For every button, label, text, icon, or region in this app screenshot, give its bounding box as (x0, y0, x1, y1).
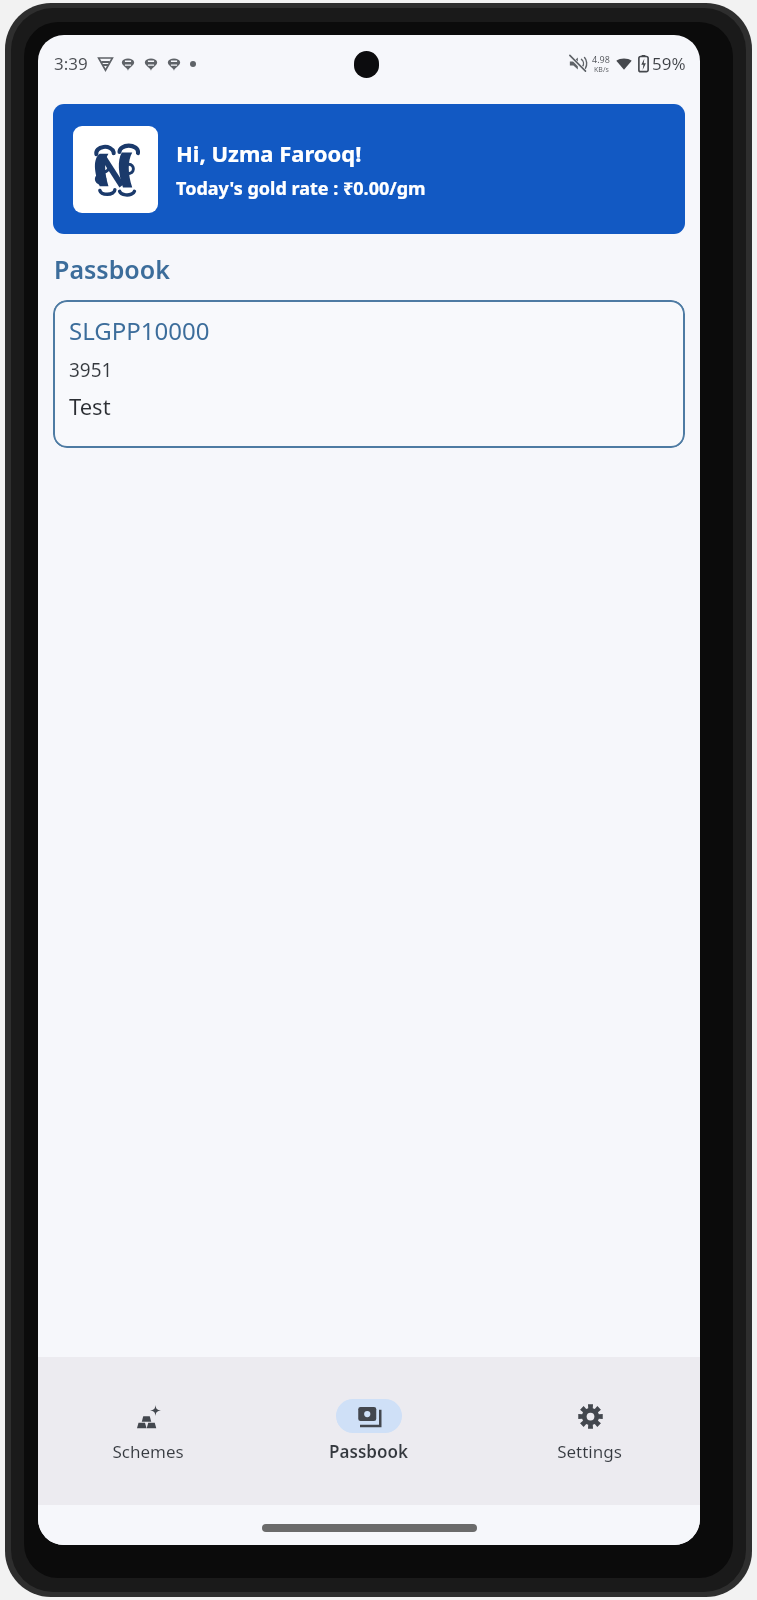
staticText: Hi, Uzma Farooq! (176, 138, 362, 168)
staticText: 59% (652, 52, 686, 75)
staticText: Passbook (54, 252, 170, 286)
staticText: KB/s (594, 65, 609, 75)
staticText: Passbook (329, 1440, 408, 1463)
staticText: Today's gold rate : ₹0.00/gm (176, 176, 426, 201)
staticText: Settings (557, 1440, 622, 1463)
button[interactable]: Passbook (258, 1357, 479, 1505)
button[interactable]: Schemes (38, 1357, 258, 1505)
staticText: 3:39 (54, 52, 88, 75)
button[interactable]: Settings (479, 1357, 700, 1505)
staticText: Test (69, 391, 111, 421)
staticText: 3951 (69, 357, 113, 383)
staticText: Schemes (112, 1440, 184, 1463)
staticText: 4.98 (592, 53, 610, 65)
button[interactable]: Hi, Uzma Farooq! (53, 104, 685, 234)
staticText: SLGPP10000 (69, 314, 210, 347)
button[interactable]: SLGPP10000 (53, 300, 685, 448)
